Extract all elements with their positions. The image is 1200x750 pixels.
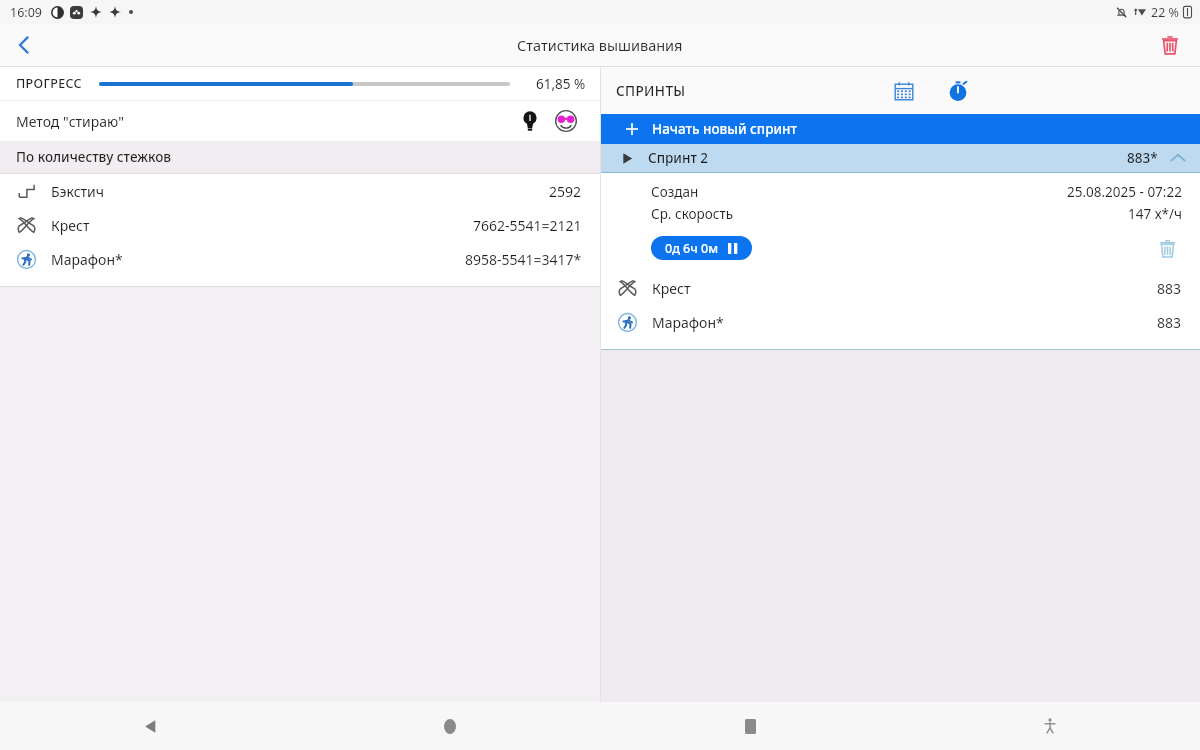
button[interactable]: Марафон* [0,242,600,276]
button[interactable]: Back [0,702,300,750]
button[interactable]: Крест [601,271,1200,305]
staticText: 883* [1127,149,1158,167]
staticText: 883 [1157,279,1182,298]
staticText: СПРИНТЫ [616,82,686,100]
button[interactable]: Метод "стираю" [0,101,600,141]
staticText: Создан [651,183,699,201]
button[interactable]: Delete sprint [1150,231,1184,265]
staticText: 22 % [1151,4,1179,21]
button[interactable]: Hint [516,107,544,135]
button[interactable]: Бэкстич [0,174,600,208]
button[interactable]: ПРОГРЕСС [0,67,600,100]
button[interactable]: Начать новый спринт [601,114,1200,144]
button[interactable]: Accessibility [900,702,1200,750]
staticText: Марафон* [51,250,123,269]
staticText: Начать новый спринт [652,120,797,138]
staticText: По количеству стежков [16,148,172,166]
staticText: 25.08.2025 - 07:22 [1067,183,1182,201]
button[interactable]: Delete [1150,25,1190,65]
staticText: ПРОГРЕСС [16,75,82,92]
staticText: Марафон* [652,313,724,332]
staticText: 2592 [549,182,582,201]
staticText: Метод "стираю" [16,112,124,131]
staticText: 7662-5541=2121 [473,216,582,235]
staticText: Статистика вышивания [517,35,683,55]
button[interactable]: Крест [0,208,600,242]
staticText: 61,85 % [536,75,586,93]
staticText: 147 х*/ч [1128,205,1182,223]
button[interactable]: Марафон* [601,305,1200,339]
button[interactable]: Спринт 2 [601,144,1200,172]
button[interactable]: Timer info [940,73,976,109]
staticText: Крест [51,216,90,235]
button[interactable]: Calendar [886,73,922,109]
staticText: Бэкстич [51,182,105,201]
staticText: Спринт 2 [648,149,709,167]
button[interactable]: 0д 6ч 0м [651,236,752,260]
staticText: Ср. скорость [651,205,734,223]
button[interactable]: Recents [600,702,900,750]
button[interactable]: Back [0,24,48,66]
staticText: Крест [652,279,691,298]
button[interactable]: Mode [552,107,580,135]
staticText: 883 [1157,313,1182,332]
staticText: 8958-5541=3417* [465,250,582,269]
staticText: 0д 6ч 0м [665,240,719,257]
button[interactable]: Home [300,702,600,750]
staticText: 16:09 [10,4,42,21]
